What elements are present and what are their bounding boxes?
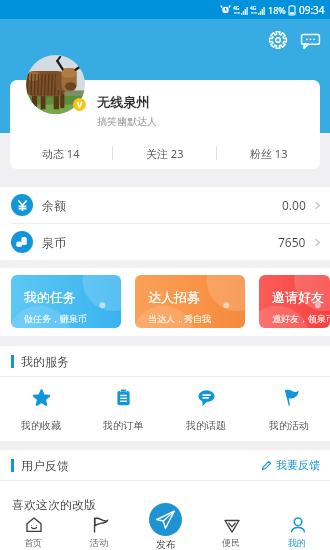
button[interactable]: 关注 23 bbox=[113, 137, 216, 169]
staticText: V bbox=[77, 99, 83, 110]
staticText: 搞笑幽默达人 bbox=[97, 115, 157, 128]
staticText: 发布 bbox=[156, 538, 176, 550]
button[interactable]: 达人招募 bbox=[135, 275, 245, 328]
staticText: 0.00 bbox=[282, 197, 306, 213]
button[interactable]: Profile avatar bbox=[26, 55, 85, 114]
staticText: 邀请好友 bbox=[272, 289, 324, 305]
button[interactable]: 发布 bbox=[149, 503, 182, 550]
staticText: 4G bbox=[250, 5, 257, 12]
staticText: 当达人，秀自我 bbox=[148, 313, 211, 324]
button[interactable]: 我的任务 bbox=[11, 275, 121, 328]
button[interactable]: 余额 bbox=[0, 187, 330, 223]
button[interactable]: Messages bbox=[297, 27, 323, 53]
staticText: 我要反馈 bbox=[276, 458, 320, 472]
button[interactable]: 我的活动 bbox=[247, 377, 330, 441]
button[interactable]: 我要反馈 bbox=[261, 458, 320, 472]
staticText: 我的活动 bbox=[269, 419, 309, 432]
staticText: 活动 bbox=[90, 537, 108, 548]
staticText: 我的 bbox=[288, 537, 306, 548]
staticText: 用户反馈 bbox=[21, 458, 69, 473]
button[interactable]: 我的话题 bbox=[164, 377, 247, 441]
staticText: 18% bbox=[268, 4, 286, 16]
button[interactable]: 动态 14 bbox=[10, 137, 112, 169]
staticText: 做任务，赚泉币 bbox=[24, 313, 87, 324]
staticText: 09:34 bbox=[299, 3, 325, 17]
staticText: 我的话题 bbox=[186, 419, 226, 432]
staticText: 4G bbox=[233, 5, 240, 12]
button[interactable]: 活动 bbox=[66, 513, 132, 550]
button[interactable]: 粉丝 13 bbox=[217, 137, 320, 169]
staticText: 动态 14 bbox=[42, 146, 80, 161]
staticText: 余额 bbox=[42, 198, 66, 213]
button[interactable]: 我的 bbox=[264, 513, 330, 550]
staticText: 首页 bbox=[24, 537, 42, 548]
button[interactable]: Settings bbox=[265, 27, 291, 53]
staticText: 喜欢这次的改版 bbox=[12, 497, 96, 512]
button[interactable]: 我的收藏 bbox=[0, 377, 82, 441]
button[interactable]: 邀请好友 bbox=[259, 275, 330, 328]
staticText: 达人招募 bbox=[148, 289, 200, 305]
staticText: 我的收藏 bbox=[21, 419, 61, 432]
staticText: 泉币 bbox=[42, 235, 66, 250]
button[interactable]: 便民 bbox=[198, 513, 264, 550]
staticText: 我的任务 bbox=[24, 289, 76, 305]
button[interactable]: 首页 bbox=[0, 513, 66, 550]
button[interactable]: 我的订单 bbox=[82, 377, 164, 441]
staticText: 我的服务 bbox=[21, 354, 69, 369]
staticText: 我的订单 bbox=[103, 419, 143, 432]
staticText: 邀好友，领泉币 bbox=[272, 313, 330, 324]
button[interactable]: 泉币 bbox=[0, 224, 330, 260]
staticText: 7650 bbox=[278, 234, 306, 250]
staticText: 粉丝 13 bbox=[250, 146, 288, 161]
staticText: 便民 bbox=[222, 537, 240, 548]
staticText: 关注 23 bbox=[146, 146, 184, 161]
staticText: 无线泉州 bbox=[97, 94, 149, 110]
